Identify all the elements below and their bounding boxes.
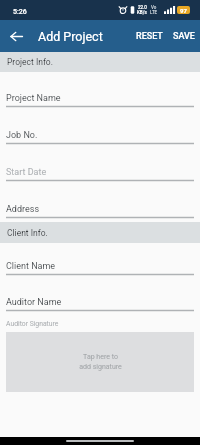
- button[interactable]: RESET: [131, 24, 168, 49]
- button[interactable]: Job No.: [0, 107, 200, 144]
- staticText: 5:26: [13, 8, 27, 16]
- button[interactable]: Client Name: [0, 243, 200, 275]
- staticText: SAVE: [173, 31, 195, 42]
- staticText: 97: [180, 7, 187, 14]
- staticText: Job No.: [6, 130, 38, 141]
- button[interactable]: Back: [4, 24, 28, 48]
- staticText: Project Name: [6, 93, 61, 104]
- button[interactable]: Tap here to add signature: [6, 332, 194, 392]
- staticText: Add Project: [38, 29, 103, 44]
- staticText: Client Info.: [7, 228, 48, 238]
- staticText: Auditor Signature: [6, 320, 59, 328]
- staticText: Vo: [151, 5, 157, 10]
- staticText: Start Date: [6, 167, 47, 178]
- button[interactable]: Start Date: [0, 144, 200, 181]
- staticText: Address: [6, 204, 40, 215]
- staticText: RESET: [136, 31, 163, 42]
- button[interactable]: SAVE: [168, 24, 200, 49]
- button[interactable]: Project Name: [0, 72, 200, 107]
- staticText: 22.0: [138, 5, 147, 10]
- button[interactable]: Address: [0, 181, 200, 218]
- staticText: KB/s: [137, 10, 147, 15]
- staticText: Auditor Name: [6, 297, 62, 308]
- button[interactable]: Auditor Name: [0, 275, 200, 311]
- staticText: LTE: [150, 10, 158, 15]
- staticText: Client Name: [6, 261, 56, 272]
- staticText: Project Info.: [7, 57, 53, 67]
- staticText: Tap here to add signature: [79, 353, 122, 370]
